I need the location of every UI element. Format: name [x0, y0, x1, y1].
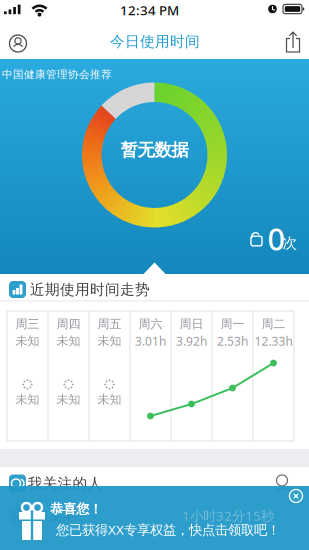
- button[interactable]: 我关注的人: [0, 469, 309, 497]
- staticText: 近期使用时间走势: [30, 280, 150, 298]
- staticText: 中国健康管理协会推荐: [2, 68, 112, 81]
- staticText: 周日: [179, 317, 203, 331]
- staticText: 未知: [15, 334, 39, 348]
- staticText: 3.92h: [176, 333, 207, 349]
- button[interactable]: [4, 30, 31, 57]
- staticText: 周二: [261, 317, 285, 331]
- staticText: 2.53h: [217, 333, 248, 349]
- staticText: 未知: [15, 392, 39, 407]
- staticText: 3.01h: [135, 333, 166, 349]
- staticText: 周三: [15, 317, 39, 331]
- staticText: 周四: [56, 317, 80, 331]
- button[interactable]: 1小时32分15秒: [0, 486, 309, 550]
- staticText: 张某某: [35, 508, 74, 524]
- button[interactable]: [289, 489, 303, 503]
- button[interactable]: 近期使用时间走势: [0, 274, 309, 301]
- staticText: 未知: [97, 334, 121, 348]
- staticText: 恭喜您！: [50, 501, 102, 517]
- staticText: 12:34 PM: [120, 1, 179, 19]
- staticText: 1小时32分15秒: [182, 507, 274, 524]
- staticText: 次: [282, 234, 297, 252]
- staticText: 周六: [138, 317, 162, 331]
- staticText: 未知: [56, 392, 80, 407]
- staticText: 0: [267, 218, 285, 259]
- staticText: 今日使用时间: [110, 32, 200, 50]
- staticText: 暂无数据: [120, 139, 188, 161]
- staticText: 周五: [97, 317, 121, 331]
- staticText: 1小时32分15秒: [182, 507, 274, 524]
- staticText: 我关注的人: [27, 474, 102, 492]
- staticText: 您已获得XX专享权益，快点击领取吧！: [56, 521, 280, 538]
- staticText: 未知: [97, 392, 121, 407]
- staticText: 周一: [220, 317, 244, 331]
- staticText: 12.33h: [254, 333, 292, 349]
- staticText: 未知: [56, 334, 80, 348]
- button[interactable]: [280, 30, 306, 54]
